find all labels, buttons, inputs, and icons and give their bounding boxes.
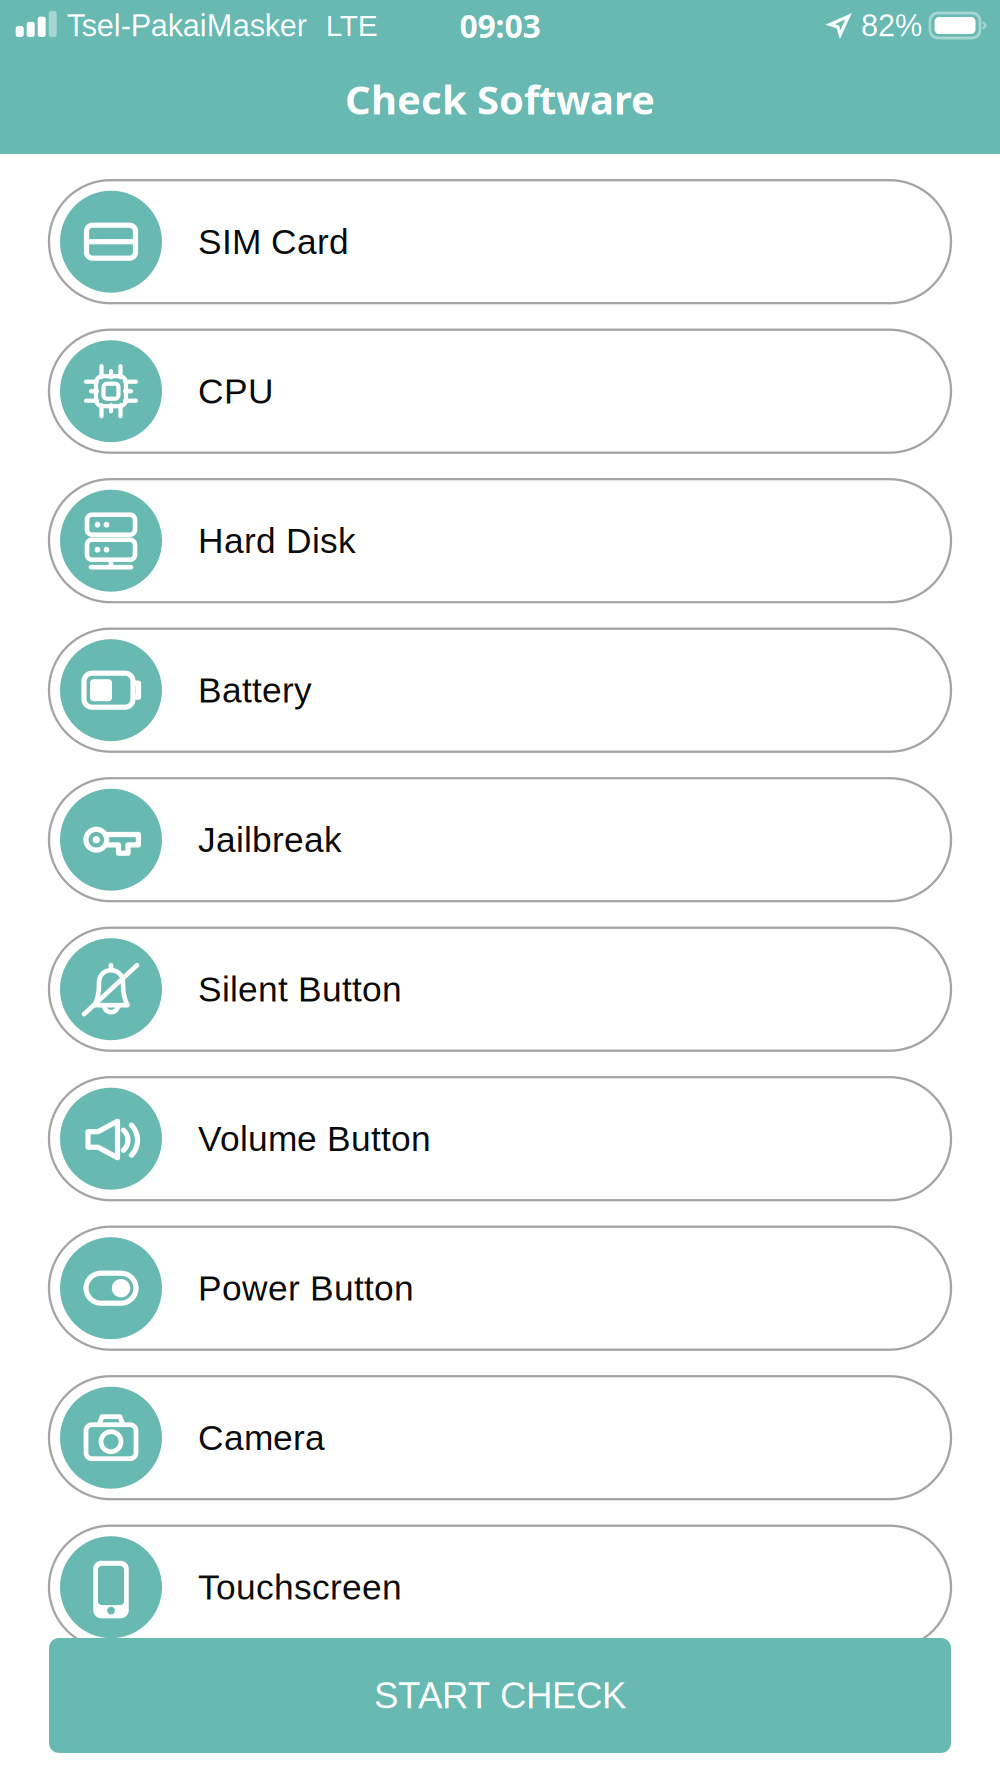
- staticText: Power Button: [198, 1268, 414, 1308]
- staticText: LTE: [326, 9, 378, 42]
- staticText: 82%: [861, 8, 922, 43]
- button[interactable]: Hard Disk: [49, 479, 951, 602]
- staticText: Camera: [198, 1418, 325, 1457]
- staticText: Check Software: [345, 72, 655, 126]
- staticText: Silent Button: [198, 969, 402, 1009]
- button[interactable]: Silent Button: [49, 928, 951, 1051]
- staticText: Volume Button: [198, 1119, 431, 1158]
- button[interactable]: SIM Card: [49, 180, 951, 303]
- button[interactable]: Power Button: [49, 1227, 951, 1350]
- staticText: Tsel-PakaiMasker: [67, 8, 307, 43]
- staticText: 09:03: [459, 4, 540, 47]
- staticText: Jailbreak: [198, 820, 342, 859]
- button[interactable]: CPU: [49, 330, 951, 453]
- button[interactable]: Camera: [49, 1376, 951, 1499]
- staticText: SIM Card: [198, 222, 349, 261]
- staticText: CPU: [198, 371, 274, 411]
- button[interactable]: Volume Button: [49, 1077, 951, 1200]
- button[interactable]: Touchscreen: [49, 1526, 951, 1649]
- staticText: START CHECK: [374, 1675, 626, 1716]
- staticText: Hard Disk: [198, 521, 356, 560]
- staticText: Battery: [198, 670, 312, 710]
- staticText: Touchscreen: [198, 1567, 402, 1607]
- button[interactable]: START CHECK: [49, 1638, 951, 1753]
- button[interactable]: Battery: [49, 629, 951, 752]
- button[interactable]: Jailbreak: [49, 778, 951, 901]
